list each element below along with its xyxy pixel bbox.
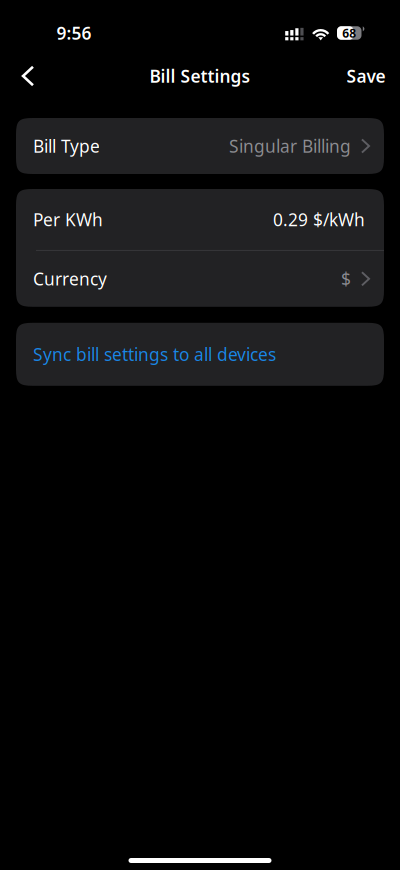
button[interactable]: Save xyxy=(337,54,395,98)
staticText: 68 xyxy=(342,25,356,41)
button[interactable]: Sync bill settings to all devices xyxy=(16,323,384,386)
staticText: Per KWh xyxy=(33,208,103,231)
staticText: Currency xyxy=(33,267,107,290)
button[interactable]: Bill Type xyxy=(16,118,384,174)
staticText: 9:56 xyxy=(56,21,91,44)
staticText: Bill Settings xyxy=(149,64,250,87)
staticText: Sync bill settings to all devices xyxy=(33,343,276,366)
staticText: 0.29 $/kWh xyxy=(273,208,365,231)
staticText: $ xyxy=(341,267,351,290)
button[interactable]: Back xyxy=(0,54,50,98)
button[interactable]: Currency xyxy=(16,251,384,307)
staticText: Save xyxy=(346,64,385,87)
staticText: Bill Type xyxy=(33,134,100,157)
staticText: Singular Billing xyxy=(229,134,351,157)
button[interactable]: Per KWh xyxy=(16,189,384,250)
